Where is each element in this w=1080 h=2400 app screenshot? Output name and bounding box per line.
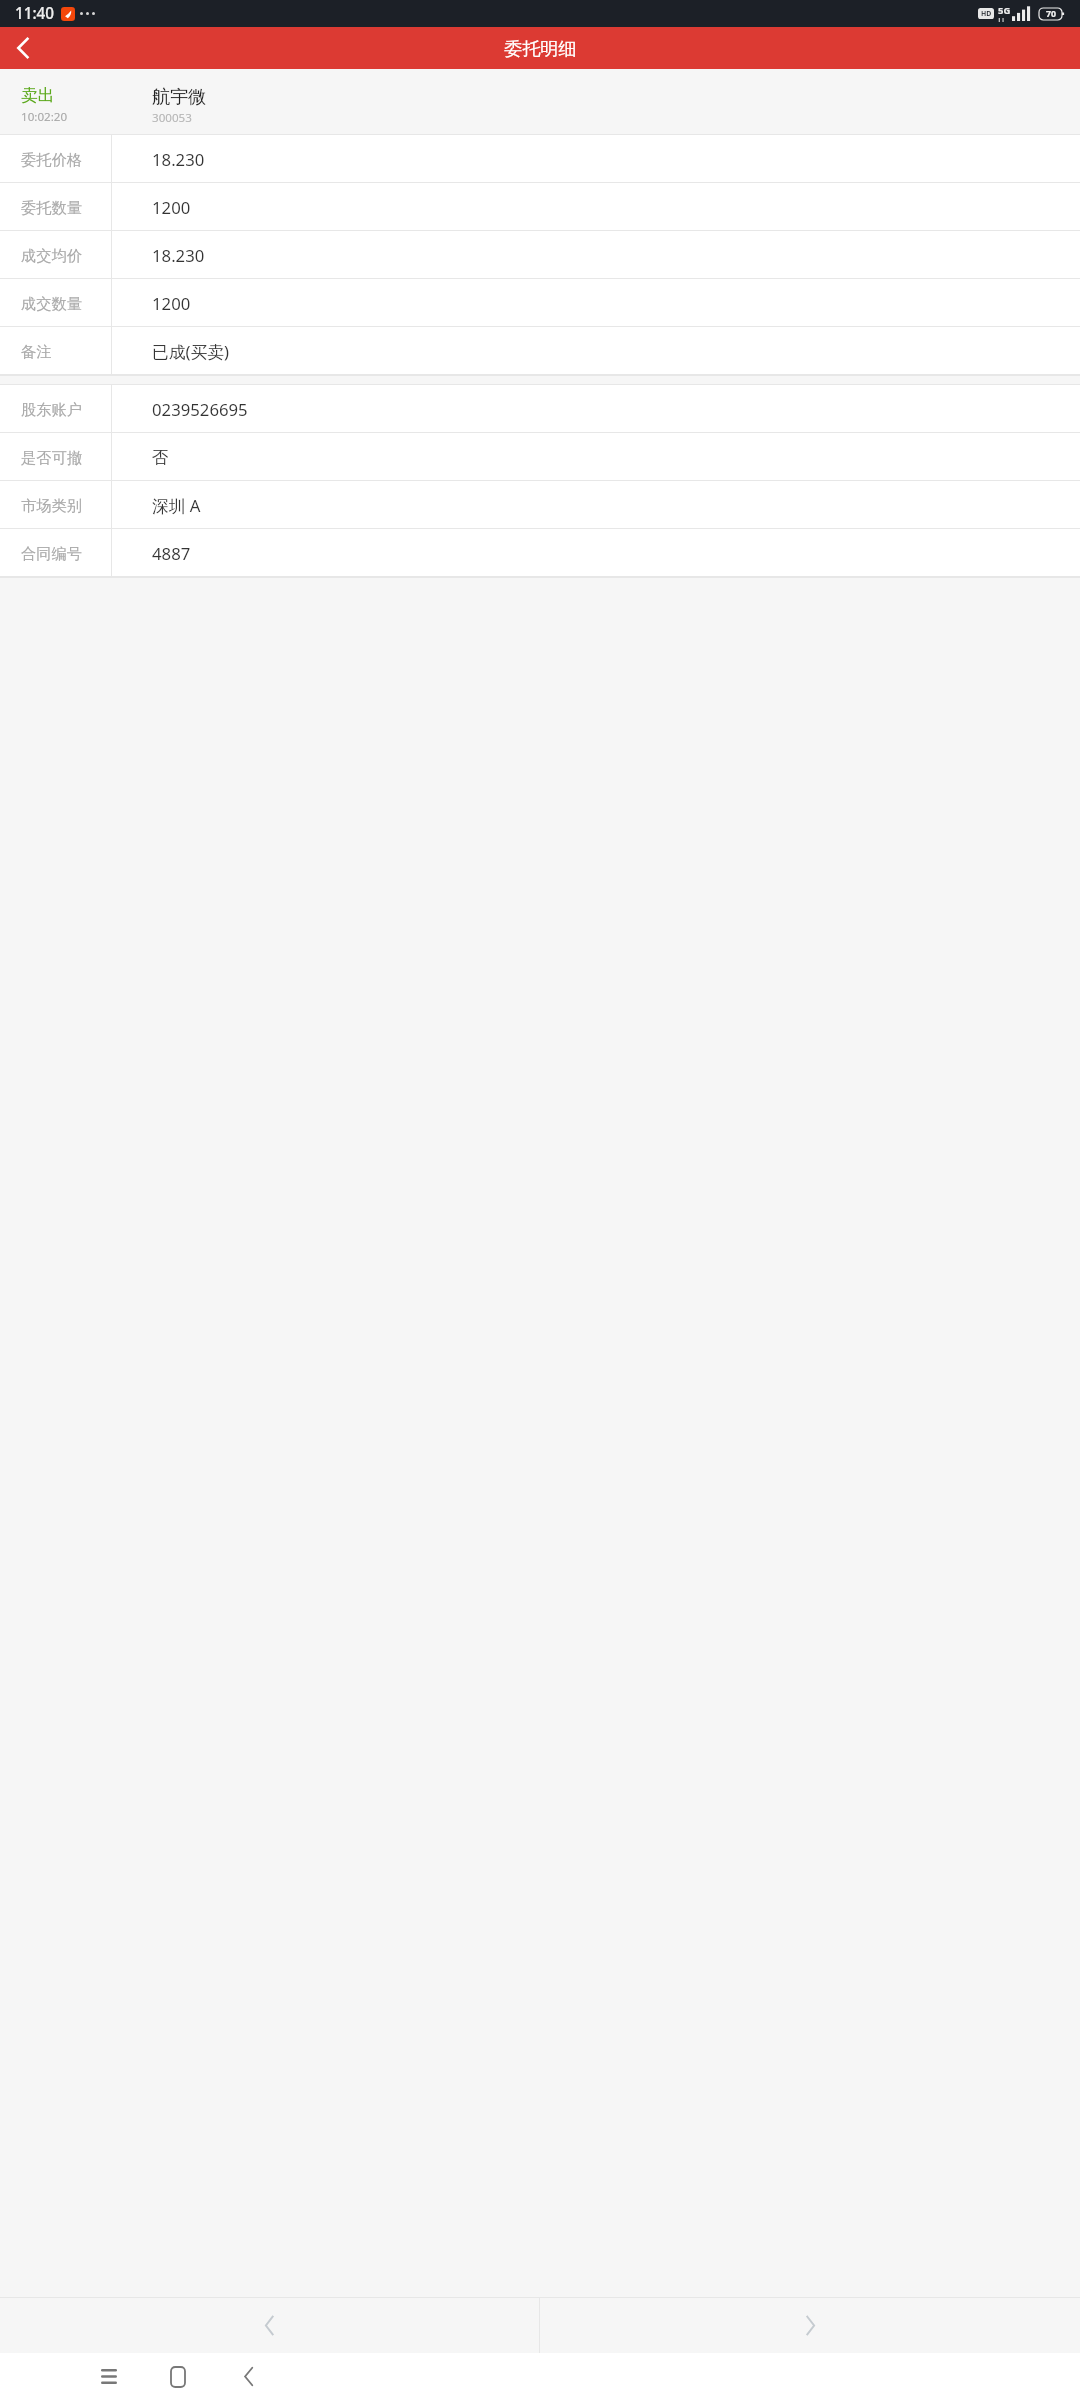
staticText: 委托明细 — [504, 37, 577, 60]
staticText: 是否可撤 — [21, 448, 83, 467]
staticText: 备注 — [21, 342, 52, 361]
staticText: 0239526695 — [152, 398, 248, 421]
button[interactable]: Recents — [76, 2353, 141, 2400]
staticText: 1200 — [152, 196, 191, 219]
staticText: 成交数量 — [21, 294, 83, 313]
staticText: HD — [981, 9, 992, 18]
staticText: 70 — [1046, 8, 1056, 20]
staticText: 5G — [998, 4, 1011, 17]
staticText: 已成(买卖) — [152, 340, 229, 363]
button[interactable]: Back — [214, 2353, 283, 2400]
staticText: 卖出 — [21, 85, 55, 106]
staticText: 成交均价 — [21, 246, 83, 265]
button[interactable]: 备注 — [0, 327, 1080, 375]
staticText: 市场类别 — [21, 496, 83, 515]
staticText: 18.230 — [152, 244, 205, 267]
staticText: 4887 — [152, 542, 191, 565]
button[interactable]: Back — [0, 27, 44, 69]
staticText: 10:02:20 — [21, 109, 68, 125]
button[interactable]: 合同编号 — [0, 529, 1080, 577]
staticText: 股东账户 — [21, 400, 83, 419]
button[interactable]: 成交均价 — [0, 231, 1080, 279]
staticText: 委托价格 — [21, 150, 83, 169]
button[interactable]: Home — [141, 2353, 214, 2400]
staticText: 否 — [152, 447, 169, 468]
button[interactable]: 股东账户 — [0, 385, 1080, 433]
button[interactable]: 委托价格 — [0, 135, 1080, 183]
staticText: 300053 — [152, 110, 192, 126]
staticText: 18.230 — [152, 148, 205, 171]
staticText: 合同编号 — [21, 544, 83, 563]
staticText: 航宇微 — [152, 85, 207, 108]
staticText: 1200 — [152, 292, 191, 315]
button[interactable]: 市场类别 — [0, 481, 1080, 529]
button[interactable]: 成交数量 — [0, 279, 1080, 327]
staticText: 深圳 A — [152, 494, 201, 517]
button[interactable]: 是否可撤 — [0, 433, 1080, 481]
staticText: 委托数量 — [21, 198, 83, 217]
staticText: 11:40 — [15, 3, 55, 24]
button[interactable]: 委托数量 — [0, 183, 1080, 231]
